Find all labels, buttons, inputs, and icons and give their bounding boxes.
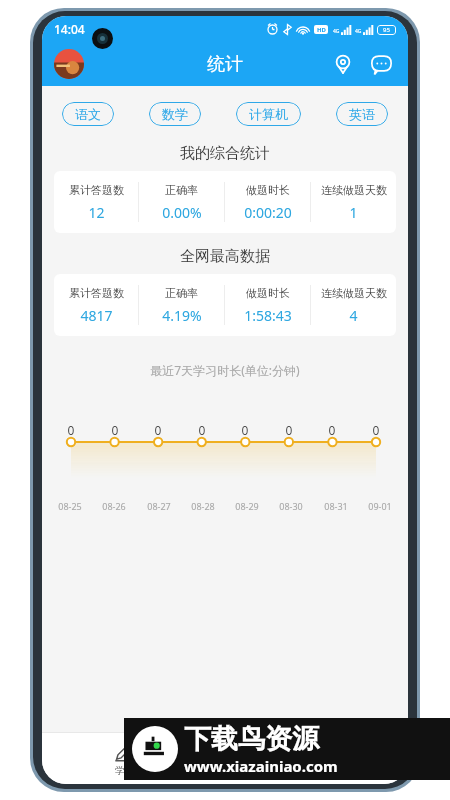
staticText: 累计答题数 — [69, 183, 124, 197]
staticText: 08-26 — [96, 500, 132, 512]
staticText: 0 — [194, 422, 210, 438]
staticText: 08-31 — [318, 500, 354, 512]
button[interactable]: 累计答题数 — [54, 274, 396, 336]
staticText: 4 — [349, 306, 358, 325]
button[interactable]: Messages — [364, 47, 398, 81]
button[interactable]: 计算机 — [236, 102, 301, 126]
staticText: HD — [317, 26, 326, 34]
staticText: 08-29 — [229, 500, 265, 512]
staticText: 最近7天学习时长(单位:分钟) — [42, 362, 408, 378]
staticText: 连续做题天数 — [321, 183, 387, 197]
staticText: 0 — [324, 422, 340, 438]
staticText: 0.00% — [162, 203, 202, 222]
staticText: 1:58:43 — [244, 306, 292, 325]
staticText: 0 — [281, 422, 297, 438]
button[interactable]: 数学 — [149, 102, 201, 126]
staticText: 学习 — [115, 764, 135, 777]
staticText: 08-30 — [273, 500, 309, 512]
staticText: 4G — [333, 28, 340, 35]
button[interactable]: 累计答题数 — [54, 171, 396, 233]
staticText: 做题时长 — [246, 286, 290, 300]
staticText: 4817 — [80, 306, 113, 325]
staticText: 12 — [88, 203, 105, 222]
staticText: 0:00:20 — [244, 203, 292, 222]
staticText: 0 — [237, 422, 253, 438]
staticText: 全网最高数据 — [42, 247, 408, 266]
staticText: 累计答题数 — [69, 286, 124, 300]
staticText: 数学 — [162, 106, 188, 122]
staticText: www.xiazainiao.com — [184, 756, 338, 776]
staticText: 08-27 — [141, 500, 177, 512]
staticText: 英语 — [349, 106, 375, 122]
staticText: 4.19% — [162, 306, 202, 325]
staticText: 14:04 — [54, 21, 85, 37]
staticText: 计算机 — [249, 106, 288, 122]
button[interactable]: 语文 — [62, 102, 114, 126]
button[interactable]: 学习 — [88, 732, 162, 784]
staticText: 下载鸟资源 — [184, 722, 319, 756]
button[interactable]: 英语 — [336, 102, 388, 126]
staticText: 95 — [383, 26, 390, 34]
button[interactable]: Profile — [54, 49, 84, 79]
staticText: 我的综合统计 — [42, 144, 408, 163]
staticText: 0 — [368, 422, 384, 438]
staticText: 语文 — [75, 106, 101, 122]
staticText: 0 — [107, 422, 123, 438]
staticText: 统计 — [207, 53, 243, 76]
staticText: 08-25 — [52, 500, 88, 512]
staticText: 09-01 — [362, 500, 398, 512]
staticText: 做题时长 — [246, 183, 290, 197]
staticText: 正确率 — [165, 286, 198, 300]
staticText: 0 — [150, 422, 166, 438]
staticText: 1 — [349, 203, 358, 222]
staticText: 连续做题天数 — [321, 286, 387, 300]
staticText: 正确率 — [165, 183, 198, 197]
staticText: 4G — [355, 28, 362, 35]
staticText: 08-28 — [185, 500, 221, 512]
button[interactable]: Location — [326, 47, 360, 81]
staticText: 0 — [63, 422, 79, 438]
